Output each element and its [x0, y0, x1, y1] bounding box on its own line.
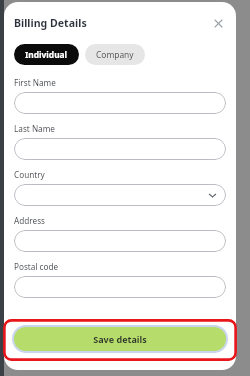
staticText: Individual: [25, 49, 68, 60]
button[interactable]: [14, 276, 226, 298]
staticText: Company: [96, 49, 134, 60]
button[interactable]: Save details: [12, 325, 228, 353]
staticText: Last Name: [14, 123, 55, 134]
button[interactable]: Close: [210, 15, 226, 31]
button[interactable]: [14, 92, 226, 114]
staticText: Postal code: [14, 261, 59, 272]
button[interactable]: [14, 230, 226, 252]
staticText: Address: [14, 215, 45, 226]
staticText: Billing Details: [14, 16, 87, 30]
staticText: First Name: [14, 77, 56, 88]
staticText: Save details: [93, 333, 147, 345]
other: Open country list: [208, 191, 217, 200]
button[interactable]: Open country list: [14, 184, 226, 206]
button[interactable]: [14, 138, 226, 160]
button[interactable]: Individual: [14, 44, 79, 65]
button[interactable]: Company: [85, 44, 145, 65]
staticText: Country: [14, 169, 45, 180]
